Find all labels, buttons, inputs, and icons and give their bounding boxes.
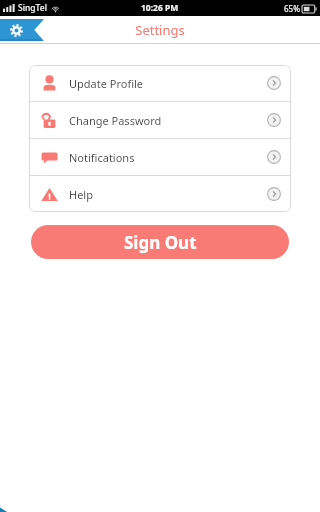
staticText: Change Password	[69, 113, 162, 128]
staticText: 65%	[284, 3, 300, 14]
button[interactable]: Update Profile	[29, 65, 291, 101]
staticText: 10:26 PM	[141, 2, 179, 14]
staticText: Help	[69, 187, 93, 202]
button[interactable]: Change Password	[29, 102, 291, 138]
staticText: SingTel	[18, 2, 47, 14]
button[interactable]: Sign Out	[31, 225, 289, 259]
button[interactable]: Help	[29, 176, 291, 212]
staticText: Notifications	[69, 150, 135, 165]
button[interactable]: Settings menu	[0, 19, 44, 41]
staticText: Settings	[135, 21, 185, 39]
staticText: Update Profile	[69, 76, 144, 91]
staticText: Sign Out	[124, 231, 197, 254]
button[interactable]: Notifications	[29, 139, 291, 175]
